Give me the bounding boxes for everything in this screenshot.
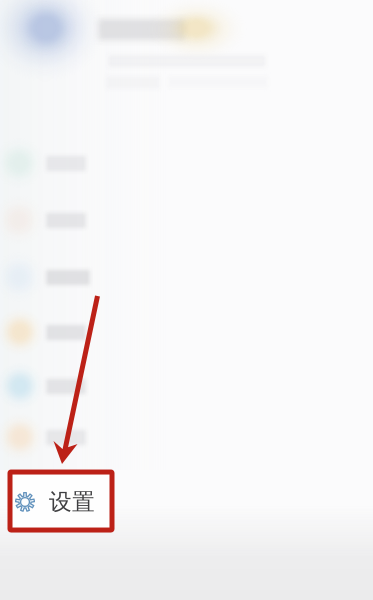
staticText: 设置 [49,488,95,516]
button[interactable]: 设置 [0,0,373,600]
